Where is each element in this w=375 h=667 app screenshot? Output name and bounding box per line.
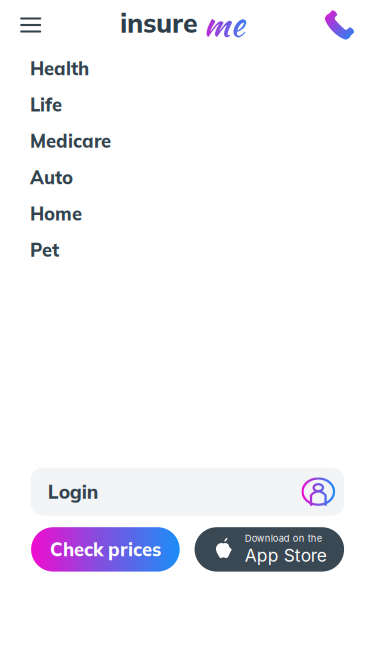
button[interactable]: Home: [0, 195, 375, 232]
button[interactable]: Check prices: [31, 527, 180, 572]
staticText: Download on the: [245, 533, 322, 544]
staticText: Health: [30, 57, 89, 80]
button[interactable]: Call us: [317, 3, 361, 47]
button[interactable]: Auto: [0, 159, 375, 195]
staticText: Check prices: [50, 538, 161, 561]
staticText: Auto: [30, 166, 73, 189]
button[interactable]: Medicare: [0, 123, 375, 159]
button[interactable]: Health: [0, 50, 375, 86]
button[interactable]: Pet: [0, 232, 375, 268]
staticText: Login: [48, 480, 99, 503]
button[interactable]: Life: [0, 86, 375, 123]
staticText: Home: [30, 202, 82, 225]
staticText: insure: [120, 6, 198, 39]
button[interactable]: Download on the App Store: [195, 527, 344, 572]
staticText: Pet: [30, 238, 59, 261]
button[interactable]: Login: [31, 468, 344, 516]
staticText: Medicare: [30, 129, 111, 152]
staticText: App Store: [245, 545, 327, 566]
button[interactable]: Menu: [9, 3, 53, 47]
staticText: Life: [30, 93, 62, 116]
